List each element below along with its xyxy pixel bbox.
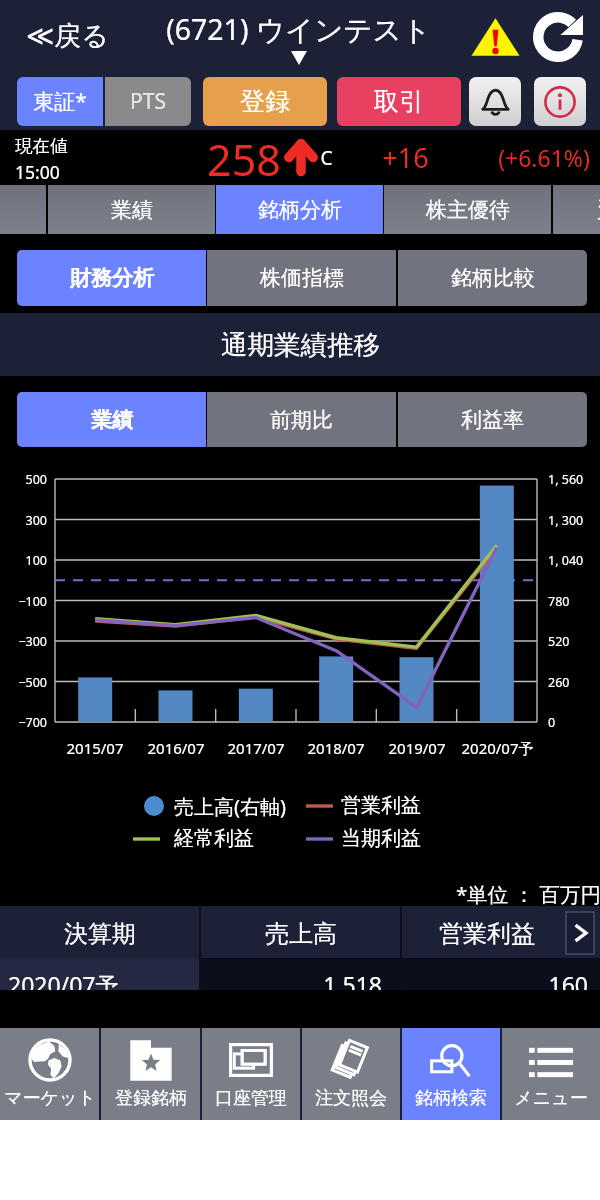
staticText: C xyxy=(320,145,333,171)
staticText: 100 xyxy=(25,552,47,569)
staticText: 売上高 xyxy=(265,919,337,949)
staticText: 営業利益 xyxy=(439,919,535,949)
staticText: 登録銘柄 xyxy=(115,1087,187,1110)
button[interactable]: 銘柄検索 xyxy=(402,1028,500,1120)
button[interactable]: 利益率 xyxy=(398,392,587,447)
button[interactable]: マーケット xyxy=(0,1028,99,1120)
staticText: (+6.61%) xyxy=(498,142,590,173)
staticText: 160 xyxy=(548,969,588,1000)
staticText: 業績 xyxy=(111,197,153,223)
button[interactable]: メニュー xyxy=(502,1028,600,1120)
staticText: 2020/07予 xyxy=(8,969,119,1000)
staticText: 登録 xyxy=(240,86,290,117)
staticText: 株主優待 xyxy=(426,197,510,223)
button[interactable]: 業績 xyxy=(17,392,206,447)
button[interactable]: Warning xyxy=(471,14,520,60)
staticText: 銘柄比較 xyxy=(451,265,535,291)
staticText: 銘柄分析 xyxy=(258,197,342,223)
staticText: 300 xyxy=(25,512,47,529)
button[interactable]: 財務分析 xyxy=(17,250,206,306)
staticText: 営業利益 xyxy=(341,793,421,818)
button[interactable]: Next columns xyxy=(566,912,594,954)
button[interactable]: PTS xyxy=(105,77,191,126)
staticText: 520 xyxy=(548,633,570,650)
staticText: 1,518 xyxy=(323,969,382,1000)
staticText: 東証* xyxy=(33,87,87,116)
staticText: 2016/07 xyxy=(147,738,205,758)
staticText: −100 xyxy=(18,593,47,610)
staticText: 1, 560 xyxy=(548,471,584,488)
button[interactable]: 登録 xyxy=(203,77,327,126)
staticText: 取引 xyxy=(374,86,424,117)
staticText: 資本 xyxy=(597,196,600,222)
staticText: 2017/07 xyxy=(227,738,285,758)
button[interactable]: 口座管理 xyxy=(202,1028,300,1120)
staticText: +16 xyxy=(382,139,429,176)
button[interactable]: 取引 xyxy=(337,77,461,126)
button[interactable]: Reload xyxy=(533,10,583,60)
button[interactable]: Alerts xyxy=(469,77,521,126)
staticText: 株価指標 xyxy=(260,265,344,291)
button[interactable]: 銘柄分析 xyxy=(216,185,383,234)
staticText: 0 xyxy=(548,714,556,731)
staticText: 260 xyxy=(548,674,570,691)
staticText: 2020/07予 xyxy=(461,738,534,758)
staticText: 決算期 xyxy=(64,919,136,949)
staticText: 現在値 xyxy=(15,135,68,157)
button[interactable]: 業績 xyxy=(48,185,215,234)
staticText: 2015/07 xyxy=(66,738,124,758)
staticText: ≪戻る xyxy=(26,19,109,53)
button[interactable]: 株主優待 xyxy=(384,185,551,234)
staticText: (6721) ウインテスト xyxy=(166,10,431,49)
staticText: 1, 040 xyxy=(548,552,584,569)
staticText: 15:00 xyxy=(15,160,60,184)
button[interactable]: 登録銘柄 xyxy=(101,1028,200,1120)
staticText: −700 xyxy=(18,714,47,731)
staticText: 258 xyxy=(207,130,281,185)
button[interactable]: ≪戻る xyxy=(18,0,117,72)
staticText: *単位 ： 百万円 xyxy=(456,880,600,906)
button[interactable]: 注文照会 xyxy=(302,1028,400,1120)
staticText: 注文照会 xyxy=(315,1087,387,1110)
staticText: −500 xyxy=(18,674,47,691)
button[interactable]: 銘柄比較 xyxy=(398,250,587,306)
staticText: 780 xyxy=(548,593,570,610)
staticText: 口座管理 xyxy=(215,1087,287,1110)
staticText: 当期利益 xyxy=(341,826,421,851)
button[interactable]: Info xyxy=(534,77,586,126)
button[interactable]: 株価指標 xyxy=(207,250,396,306)
staticText: 業績 xyxy=(91,407,133,433)
staticText: 2019/07 xyxy=(388,738,446,758)
staticText: 通期業績推移 xyxy=(221,328,380,361)
staticText: 売上高(右軸) xyxy=(174,793,286,820)
staticText: 2018/07 xyxy=(307,738,365,758)
staticText: 銘柄検索 xyxy=(415,1087,487,1110)
staticText: 500 xyxy=(25,471,47,488)
staticText: メニュー xyxy=(514,1087,588,1110)
staticText: PTS xyxy=(130,87,166,116)
staticText: −300 xyxy=(18,633,47,650)
staticText: 利益率 xyxy=(461,407,524,433)
staticText: 財務分析 xyxy=(70,265,154,291)
staticText: 1, 300 xyxy=(548,512,584,529)
staticText: マーケット xyxy=(4,1087,96,1110)
button[interactable]: 前期比 xyxy=(207,392,396,447)
staticText: 前期比 xyxy=(270,407,333,433)
button[interactable]: 資本 xyxy=(553,185,600,234)
staticText: 経常利益 xyxy=(174,826,254,851)
button[interactable]: 東証* xyxy=(17,77,103,126)
button[interactable]: 株主優待 xyxy=(0,185,46,234)
